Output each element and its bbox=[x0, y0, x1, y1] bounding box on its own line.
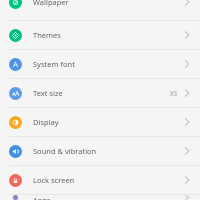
staticText: XS bbox=[170, 89, 178, 97]
button[interactable]: Wallpaper bbox=[0, 0, 200, 12]
button[interactable]: Lock screen bbox=[0, 166, 200, 194]
staticText: Themes bbox=[33, 30, 184, 40]
staticText: System font bbox=[33, 59, 184, 69]
staticText: Wallpaper bbox=[33, 0, 184, 7]
staticText: Sound & vibration bbox=[33, 146, 184, 156]
staticText: Apps bbox=[33, 195, 184, 200]
button[interactable]: Text size bbox=[0, 79, 200, 107]
button[interactable]: Apps bbox=[0, 195, 200, 200]
staticText: Lock screen bbox=[33, 175, 184, 185]
button[interactable]: Themes bbox=[0, 21, 200, 49]
button[interactable]: Display bbox=[0, 108, 200, 136]
button[interactable]: Sound & vibration bbox=[0, 137, 200, 165]
staticText: Text size bbox=[33, 88, 170, 98]
staticText: Display bbox=[33, 117, 184, 127]
button[interactable]: System font bbox=[0, 50, 200, 78]
